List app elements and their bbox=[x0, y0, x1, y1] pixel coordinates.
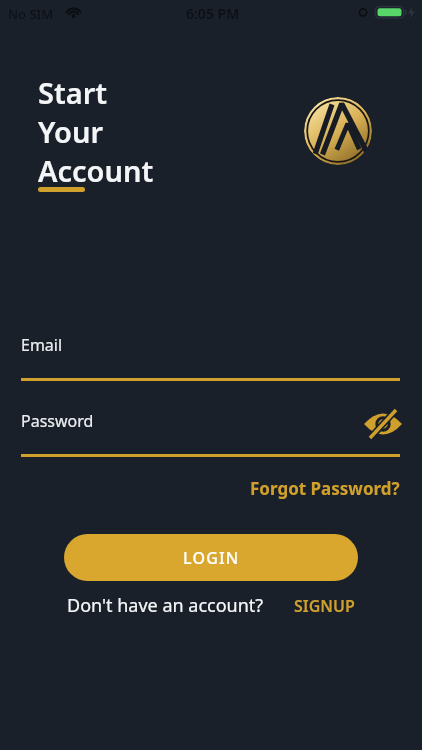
staticText: No SIM bbox=[8, 5, 54, 23]
staticText: Account bbox=[38, 151, 154, 190]
button[interactable]: Email bbox=[21, 334, 400, 381]
staticText: LOGIN bbox=[183, 547, 240, 569]
button[interactable]: LOGIN bbox=[64, 534, 358, 581]
button[interactable]: Password bbox=[21, 410, 400, 457]
staticText: 6:05 PM bbox=[186, 4, 240, 23]
button[interactable]: Forgot Password? bbox=[250, 477, 400, 500]
button[interactable] bbox=[358, 404, 406, 444]
staticText: Start bbox=[38, 73, 108, 112]
staticText: Email bbox=[21, 334, 63, 356]
staticText: Don't have an account? bbox=[67, 593, 264, 618]
staticText: Your bbox=[38, 112, 104, 151]
button[interactable]: SIGNUP bbox=[294, 595, 355, 617]
staticText: Password bbox=[21, 410, 94, 432]
